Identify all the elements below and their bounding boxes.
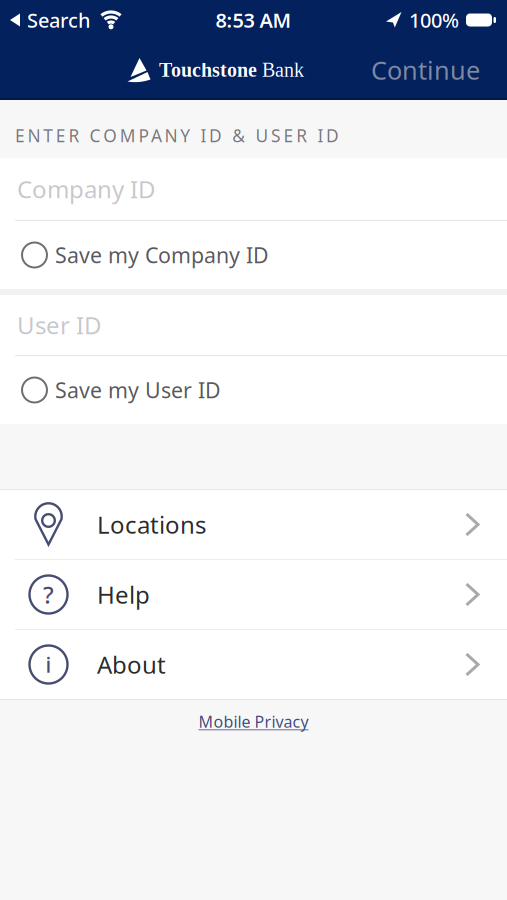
staticText: Search — [27, 7, 91, 33]
button[interactable]: Search — [10, 7, 124, 33]
button[interactable]: User ID — [0, 295, 507, 355]
staticText: Touchstone — [159, 59, 257, 81]
staticText: About — [97, 649, 166, 680]
staticText: Save my User ID — [55, 376, 221, 404]
staticText: 100% — [409, 7, 459, 33]
button[interactable]: Save my Company ID — [0, 221, 507, 289]
button[interactable]: Save my User ID — [0, 356, 507, 424]
staticText: i — [45, 650, 51, 679]
button[interactable]: i — [0, 630, 507, 699]
staticText: User ID — [17, 309, 102, 341]
staticText: Bank — [262, 59, 304, 81]
staticText: Mobile Privacy — [198, 711, 308, 732]
staticText: Continue — [371, 53, 480, 87]
staticText: Save my Company ID — [55, 241, 269, 269]
staticText: ? — [43, 579, 54, 610]
button[interactable]: Mobile Privacy — [198, 711, 308, 732]
staticText: Company ID — [17, 173, 156, 205]
button[interactable]: ? — [0, 560, 507, 629]
staticText: Locations — [97, 509, 206, 540]
staticText: 8:53 AM — [215, 7, 291, 33]
button[interactable]: Company ID — [0, 158, 507, 220]
staticText: Help — [97, 579, 150, 610]
button[interactable]: Continue — [371, 53, 480, 87]
staticText: ENTER COMPANY ID & USER ID — [15, 124, 339, 147]
button[interactable]: Locations — [0, 490, 507, 559]
